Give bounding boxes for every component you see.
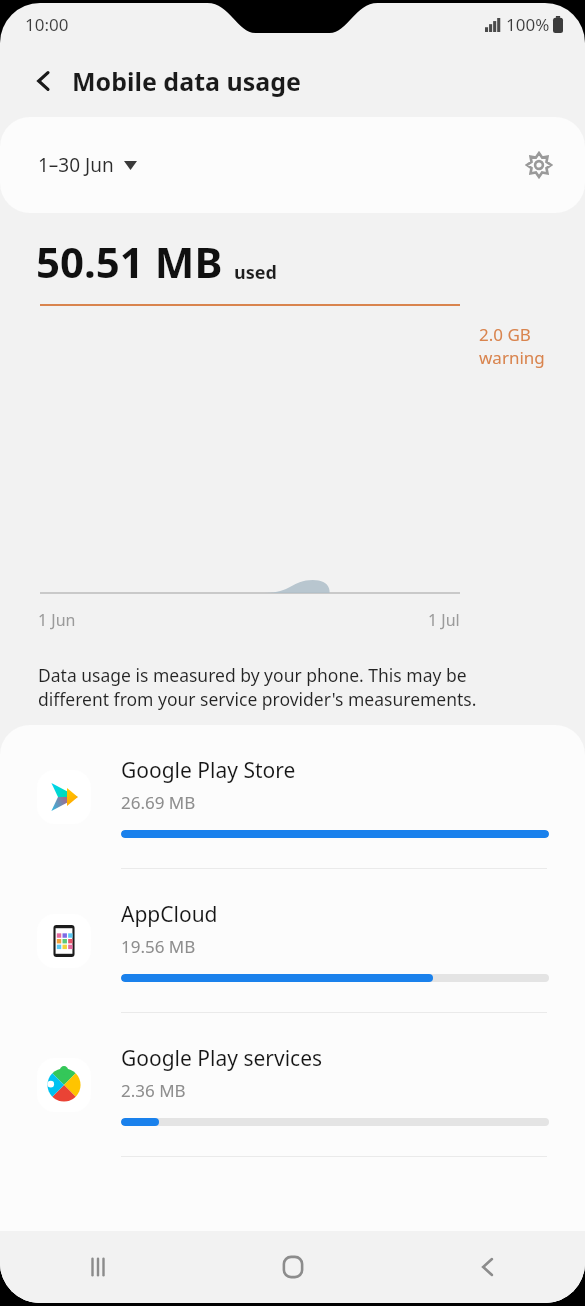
staticText: Data usage is measured by your phone. Th… — [38, 663, 467, 687]
staticText: 2.36 MB — [121, 1079, 186, 1102]
staticText: 10:00 — [25, 13, 69, 36]
staticText: 2.0 GB — [479, 323, 531, 346]
button[interactable]: Recent apps — [0, 1231, 195, 1303]
staticText: different from your service provider's m… — [38, 687, 477, 711]
button[interactable]: Back — [390, 1231, 585, 1303]
button[interactable]: Home — [195, 1231, 390, 1303]
staticText: 26.69 MB — [121, 791, 196, 814]
button[interactable]: Google Play Store — [0, 725, 585, 869]
staticText: 19.56 MB — [121, 935, 196, 958]
staticText: used — [234, 260, 277, 285]
staticText: 50.51 MB — [36, 233, 223, 290]
staticText: 1–30 Jun — [38, 152, 114, 178]
staticText: Mobile data usage — [72, 64, 301, 98]
button[interactable]: Google Play services — [0, 1013, 585, 1157]
staticText: 100% — [506, 13, 550, 36]
button[interactable]: Settings — [515, 141, 563, 189]
staticText: Google Play services — [121, 1044, 323, 1073]
button[interactable]: 1–30 Jun — [30, 144, 145, 186]
button[interactable]: AppCloud — [0, 869, 585, 1013]
staticText: Google Play Store — [121, 756, 296, 785]
staticText: warning — [479, 346, 545, 369]
button[interactable]: Back — [24, 61, 64, 101]
staticText: 1 Jun — [38, 609, 76, 631]
staticText: AppCloud — [121, 900, 218, 929]
staticText: 1 Jul — [428, 609, 460, 631]
